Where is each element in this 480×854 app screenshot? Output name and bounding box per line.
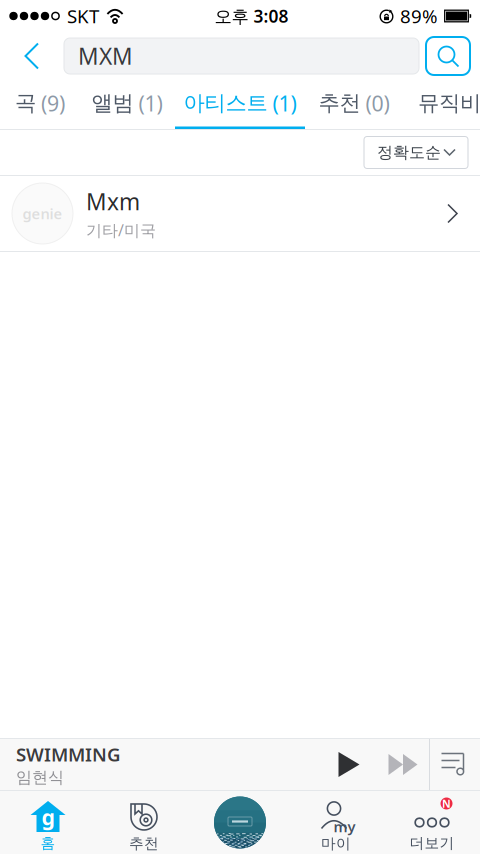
staticText: 정확도순: [377, 143, 441, 162]
staticText: g: [41, 803, 54, 831]
staticText: N: [442, 796, 451, 811]
button[interactable]: Now Playing: [192, 791, 288, 854]
button[interactable]: Play: [321, 739, 377, 790]
staticText: SWIMMING: [16, 742, 121, 767]
button[interactable]: 정확도순: [364, 136, 468, 168]
staticText: genie: [22, 204, 62, 223]
staticText: 임현식: [16, 768, 64, 787]
staticText: 앨범: [91, 90, 133, 116]
staticText: 홈: [40, 834, 55, 852]
staticText: (1): [138, 89, 162, 117]
button[interactable]: 앨범: [80, 80, 174, 129]
button[interactable]: SWIMMING: [0, 739, 121, 790]
staticText: 아티스트: [183, 90, 267, 116]
button[interactable]: N: [384, 791, 480, 854]
button[interactable]: 뮤직비디오: [402, 80, 480, 129]
button[interactable]: 아티스트: [174, 80, 306, 129]
staticText: (9): [41, 89, 65, 117]
staticText: 뮤직비디오: [418, 90, 480, 116]
button[interactable]: my: [288, 791, 384, 854]
staticText: SKT: [67, 4, 99, 28]
staticText: (0): [365, 89, 389, 117]
button[interactable]: 추천: [96, 791, 192, 854]
staticText: 더보기: [409, 834, 454, 852]
staticText: 추천: [318, 90, 360, 116]
staticText: my: [333, 817, 355, 836]
button[interactable]: g: [0, 791, 96, 854]
staticText: 마이: [321, 834, 351, 852]
staticText: MXM: [78, 41, 133, 71]
button[interactable]: 곡: [0, 80, 80, 129]
staticText: 89%: [400, 4, 438, 28]
staticText: 곡: [15, 90, 36, 116]
staticText: 추천: [129, 834, 159, 852]
button[interactable]: Search: [426, 32, 480, 80]
button[interactable]: Next: [377, 739, 429, 790]
button[interactable]: 추천: [306, 80, 402, 129]
staticText: Mxm: [86, 186, 140, 216]
button[interactable]: Playlist: [429, 739, 480, 790]
staticText: 오후 3:08: [214, 4, 288, 27]
staticText: (1): [272, 89, 296, 117]
button[interactable]: Back: [0, 32, 64, 80]
button[interactable]: genie: [0, 176, 480, 251]
staticText: 기타/미국: [86, 219, 156, 241]
